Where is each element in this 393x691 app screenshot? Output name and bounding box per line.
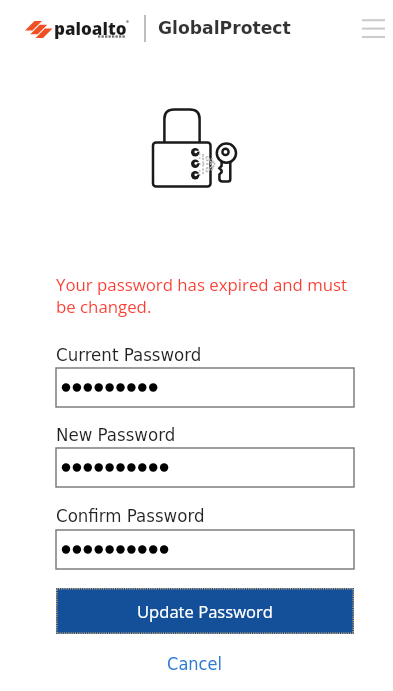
- button[interactable]: Cancel: [0, 650, 391, 676]
- button[interactable]: [56, 368, 354, 407]
- button[interactable]: [56, 530, 354, 569]
- button[interactable]: Menu: [354, 9, 393, 47]
- staticText: Current Password: [56, 344, 202, 366]
- staticText: GlobalProtect: [158, 18, 291, 38]
- staticText: Confirm Password: [56, 505, 205, 527]
- staticText: paloalto: [54, 17, 127, 40]
- staticText: Update Password: [137, 600, 273, 623]
- staticText: Cancel: [167, 653, 222, 674]
- staticText: New Password: [56, 424, 176, 446]
- staticText: Your password has expired and must be ch…: [56, 273, 354, 318]
- button[interactable]: [56, 448, 354, 487]
- button[interactable]: Update Password: [56, 588, 354, 634]
